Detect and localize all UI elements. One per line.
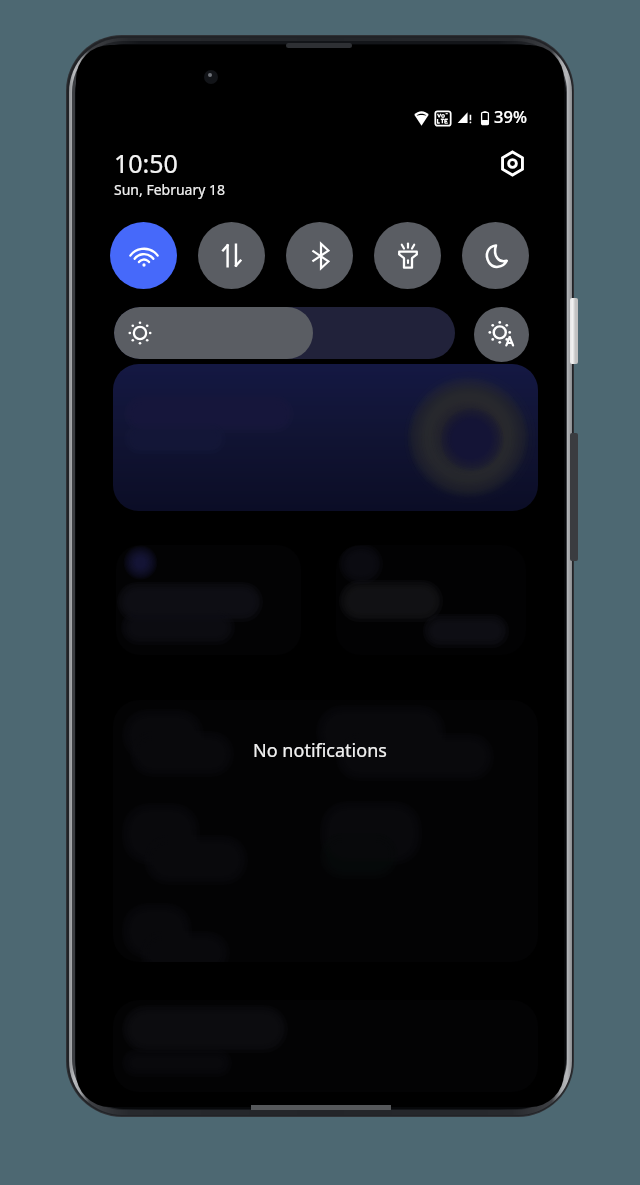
- button[interactable]: Do not disturb: [462, 222, 529, 289]
- button[interactable]: Brightness: [114, 307, 455, 359]
- button[interactable]: Wi-Fi: [110, 222, 177, 289]
- button[interactable]: [113, 364, 538, 511]
- button[interactable]: Settings: [495, 146, 530, 181]
- staticText: No notifications: [253, 738, 387, 763]
- button[interactable]: [336, 545, 526, 655]
- button[interactable]: Volume: [570, 433, 578, 561]
- button[interactable]: [116, 545, 301, 655]
- staticText: 10:50: [114, 146, 178, 180]
- button[interactable]: Power: [570, 298, 578, 364]
- button[interactable]: Auto brightness: [474, 307, 529, 362]
- staticText: 39%: [494, 105, 527, 127]
- staticText: Sun, February 18: [114, 180, 226, 199]
- button[interactable]: Flashlight: [374, 222, 441, 289]
- button[interactable]: Mobile data: [198, 222, 265, 289]
- button[interactable]: Bluetooth: [286, 222, 353, 289]
